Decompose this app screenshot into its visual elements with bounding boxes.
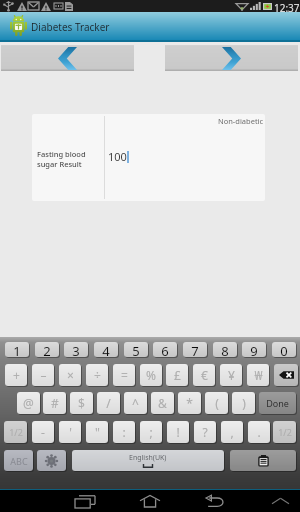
staticText: ₩: [254, 367, 263, 383]
staticText: ;: [149, 424, 153, 440]
staticText: (: [215, 395, 219, 411]
button[interactable]: !: [167, 421, 189, 443]
button[interactable]: -: [32, 421, 54, 443]
button[interactable]: 5: [124, 342, 148, 357]
staticText: ^: [132, 395, 139, 411]
staticText: &: [158, 395, 167, 411]
button[interactable]: 1: [5, 342, 29, 357]
staticText: !: [176, 424, 180, 440]
staticText: ¥: [228, 367, 235, 383]
button[interactable]: 1/2: [273, 421, 296, 443]
staticText: Non-diabetic: [218, 116, 264, 126]
button[interactable]: 4: [94, 342, 118, 357]
button[interactable]: :: [113, 421, 135, 443]
staticText: 6: [161, 342, 169, 357]
staticText: 1: [13, 342, 21, 357]
button[interactable]: ABC: [4, 450, 33, 471]
button[interactable]: #: [43, 392, 66, 414]
staticText: 8: [221, 342, 229, 357]
staticText: 2: [43, 342, 51, 357]
staticText: ÷: [94, 367, 101, 383]
staticText: €: [201, 367, 208, 383]
staticText: 1/2: [278, 426, 292, 438]
button[interactable]: Input method: [230, 450, 296, 471]
staticText: *: [186, 395, 193, 411]
staticText: 7: [191, 342, 199, 357]
staticText: +: [13, 367, 20, 383]
button[interactable]: /: [97, 392, 120, 414]
button[interactable]: 6: [153, 342, 177, 357]
staticText: 1/2: [9, 426, 23, 438]
staticText: ?: [202, 424, 208, 440]
staticText: $: [78, 395, 85, 411]
staticText: /: [106, 395, 111, 411]
button[interactable]: Settings: [37, 450, 66, 471]
button[interactable]: ': [59, 421, 81, 443]
button[interactable]: Space: [72, 450, 224, 471]
button[interactable]: &: [151, 392, 174, 414]
button[interactable]: ¥: [220, 364, 242, 386]
staticText: ×: [67, 367, 74, 383]
button[interactable]: 3: [64, 342, 88, 357]
button[interactable]: ": [86, 421, 108, 443]
button[interactable]: ;: [140, 421, 162, 443]
button[interactable]: $: [70, 392, 93, 414]
button[interactable]: Show notifications: [262, 490, 298, 512]
button[interactable]: –: [32, 364, 54, 386]
button[interactable]: 0: [272, 342, 296, 357]
staticText: ': [69, 424, 72, 440]
button[interactable]: Backspace: [274, 364, 298, 386]
button[interactable]: Home: [130, 490, 170, 512]
staticText: ): [242, 395, 246, 411]
staticText: Diabetes Tracker: [31, 20, 110, 34]
button[interactable]: Recents: [65, 490, 105, 512]
button[interactable]: £: [166, 364, 188, 386]
staticText: -: [41, 424, 45, 440]
staticText: –: [40, 367, 47, 383]
button[interactable]: *: [178, 392, 201, 414]
button[interactable]: Back: [195, 490, 235, 512]
staticText: ,: [230, 424, 234, 440]
staticText: £: [174, 367, 181, 383]
button[interactable]: @: [17, 392, 40, 414]
button[interactable]: Done: [259, 392, 296, 414]
button[interactable]: 9: [242, 342, 266, 357]
button[interactable]: ,: [221, 421, 243, 443]
staticText: 0: [280, 342, 288, 357]
button[interactable]: %: [140, 364, 162, 386]
button[interactable]: (: [205, 392, 228, 414]
button[interactable]: 1/2: [4, 421, 27, 443]
staticText: :: [122, 424, 126, 440]
staticText: ": [95, 424, 100, 440]
staticText: %: [146, 367, 156, 383]
button[interactable]: 7: [183, 342, 207, 357]
staticText: #: [51, 395, 59, 411]
staticText: ABC: [10, 455, 28, 467]
staticText: 12:37: [274, 1, 300, 13]
button[interactable]: ?: [194, 421, 216, 443]
staticText: 9: [250, 342, 258, 357]
button[interactable]: 8: [213, 342, 237, 357]
button[interactable]: ×: [59, 364, 81, 386]
button[interactable]: +: [5, 364, 27, 386]
button[interactable]: Next: [165, 45, 298, 71]
staticText: Fasting blood sugar Result: [37, 149, 86, 169]
staticText: 100: [108, 149, 127, 164]
staticText: =: [121, 367, 128, 383]
staticText: 4: [102, 342, 110, 357]
button[interactable]: €: [193, 364, 215, 386]
staticText: English(UK): [129, 453, 167, 463]
button[interactable]: ^: [124, 392, 147, 414]
button[interactable]: ): [232, 392, 255, 414]
button[interactable]: ₩: [247, 364, 269, 386]
staticText: .: [257, 424, 261, 440]
button[interactable]: ÷: [86, 364, 108, 386]
staticText: 5: [132, 342, 140, 357]
button[interactable]: =: [113, 364, 135, 386]
staticText: 3: [72, 342, 80, 357]
staticText: @: [23, 395, 34, 411]
button[interactable]: .: [248, 421, 270, 443]
button[interactable]: Previous: [1, 45, 134, 71]
button[interactable]: 2: [35, 342, 59, 357]
staticText: Done: [266, 397, 289, 409]
